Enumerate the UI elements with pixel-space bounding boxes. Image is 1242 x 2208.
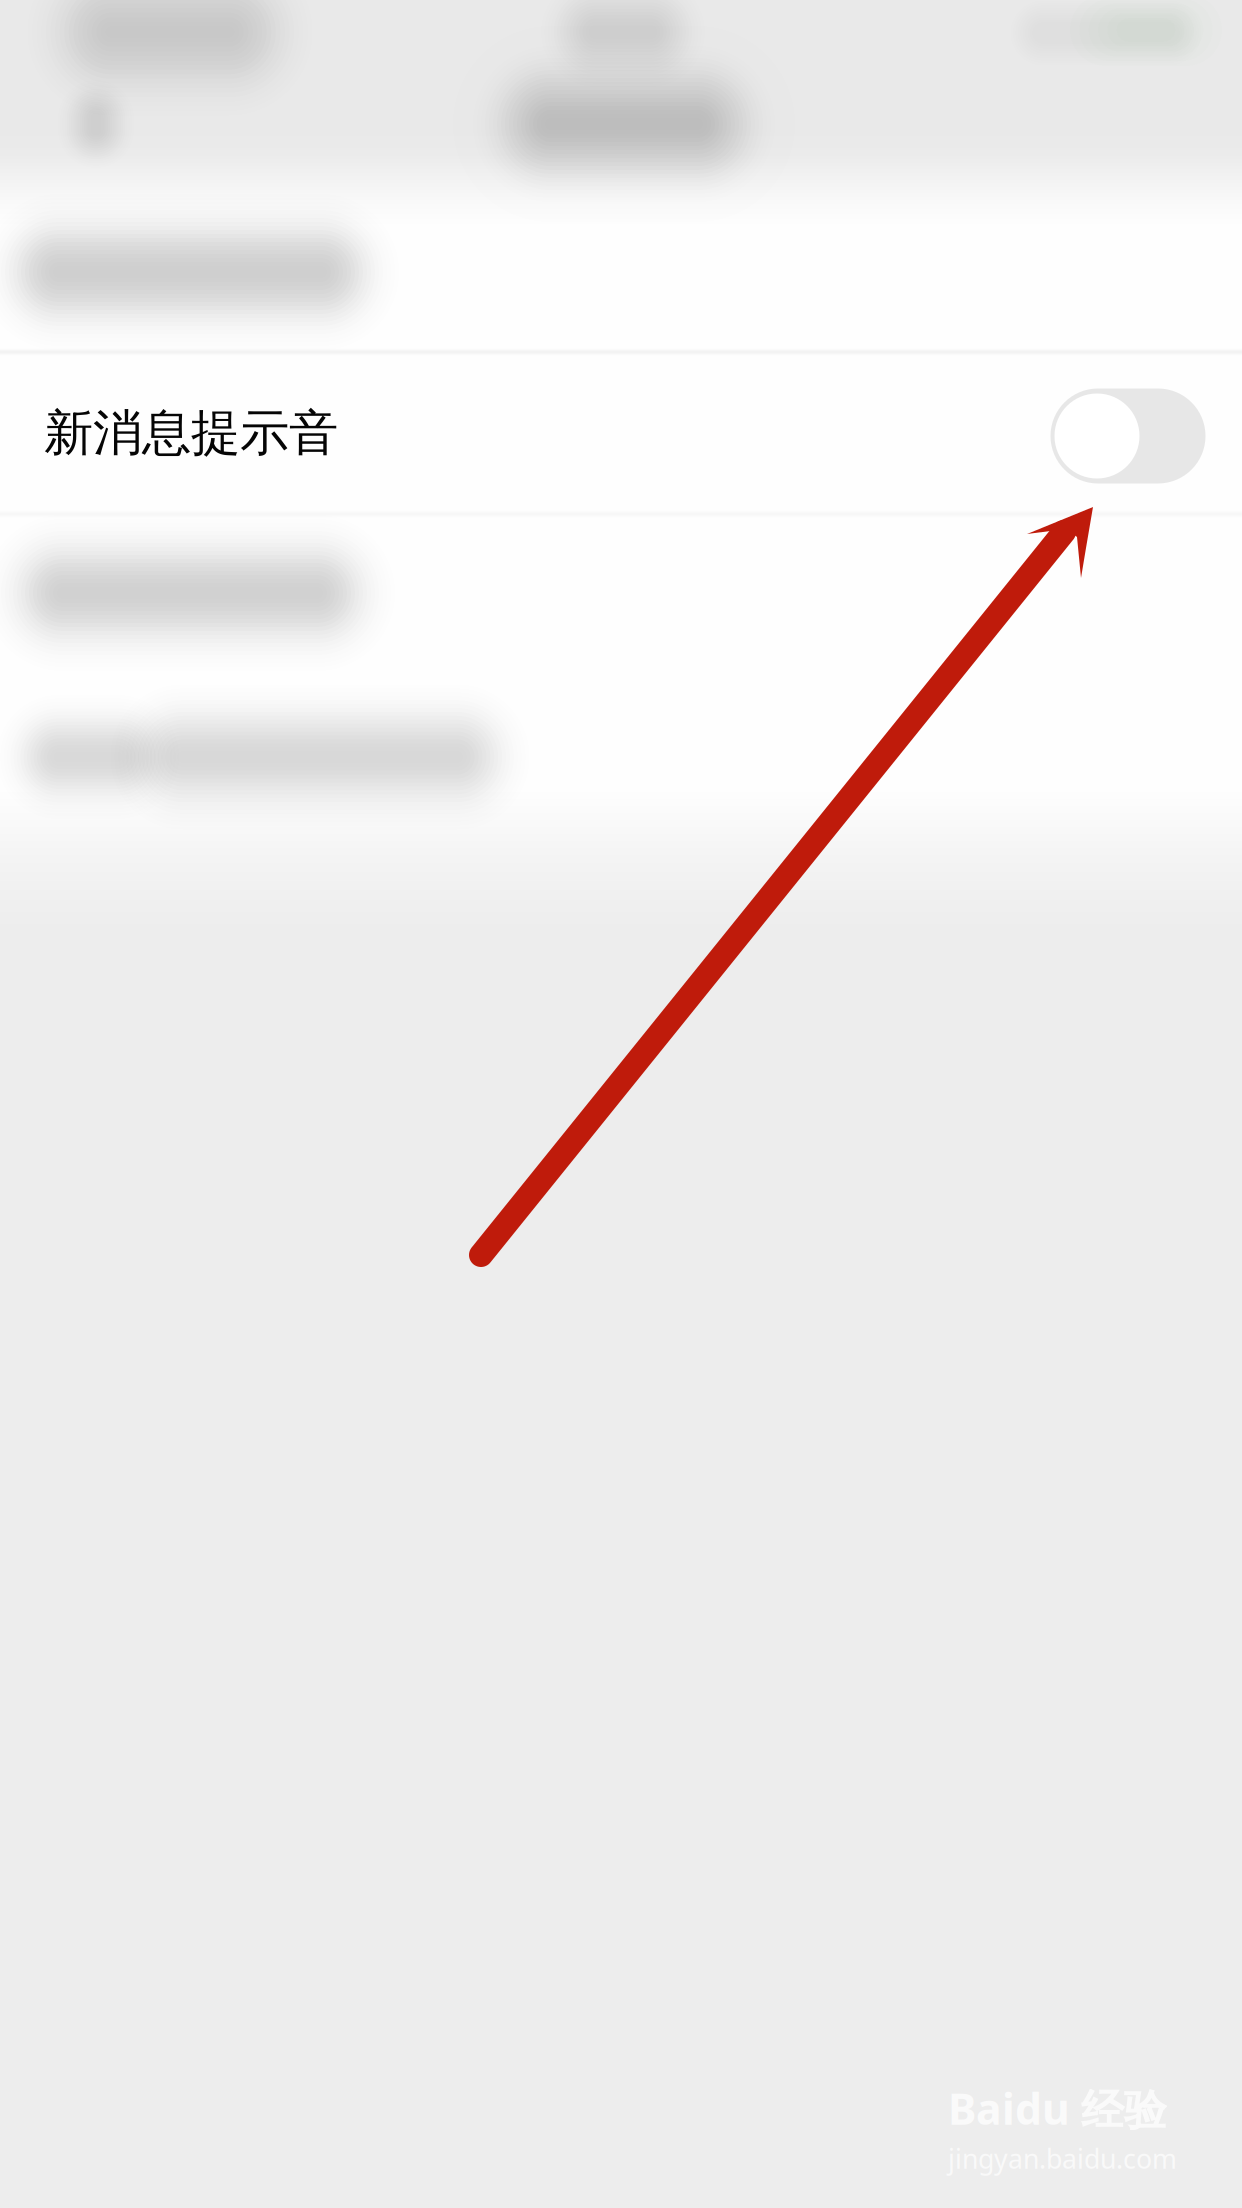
staticText: Baidu 经验 <box>948 2080 1167 2137</box>
staticText: jingyan.baidu.com <box>948 2141 1177 2176</box>
staticText: 新消息提示音 <box>44 403 338 463</box>
button[interactable]: 新消息提示音 <box>0 353 1242 513</box>
button[interactable]: 新消息提示音 <box>1050 388 1205 483</box>
